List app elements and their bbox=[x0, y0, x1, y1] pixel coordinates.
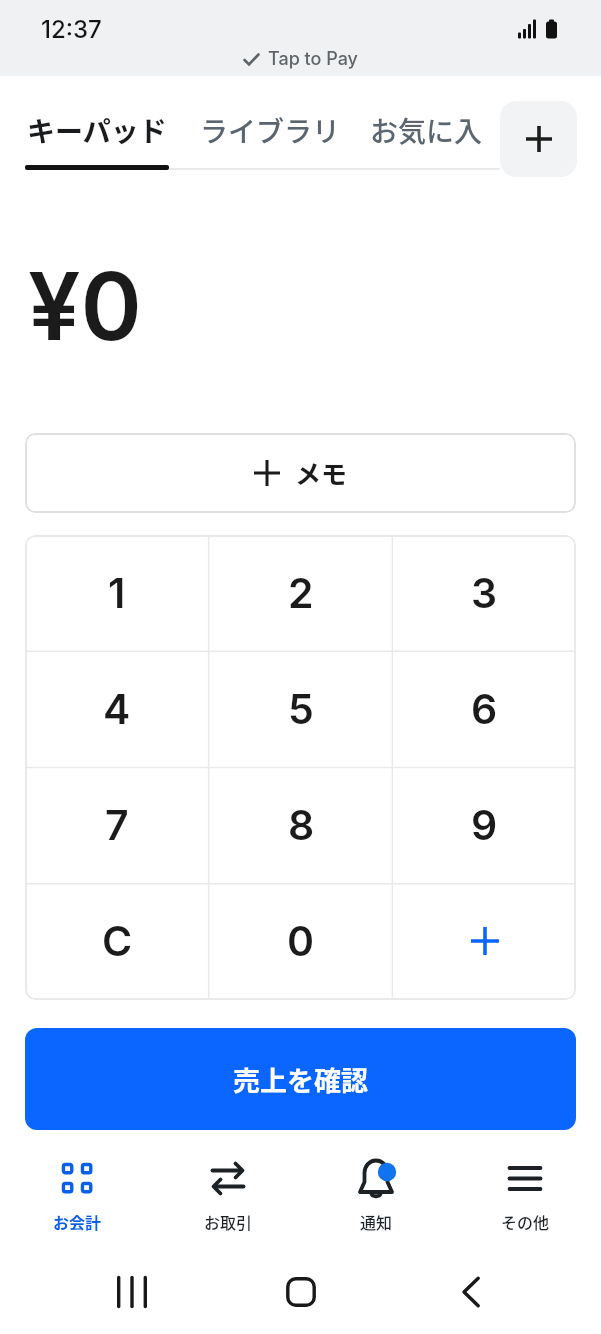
button[interactable]: キーパッド bbox=[27, 110, 167, 151]
button[interactable]: 9 bbox=[393, 767, 576, 883]
staticText: ライブラリ bbox=[200, 110, 341, 151]
button[interactable] bbox=[393, 883, 576, 999]
button[interactable] bbox=[500, 101, 577, 177]
staticText: 4 bbox=[103, 684, 131, 734]
button[interactable]: 7 bbox=[25, 767, 209, 883]
button[interactable] bbox=[433, 1262, 509, 1322]
button[interactable]: 2 bbox=[209, 535, 393, 651]
staticText: 2 bbox=[288, 568, 314, 618]
staticText: お会計 bbox=[53, 1210, 102, 1233]
staticText: 3 bbox=[471, 568, 498, 618]
button[interactable]: 6 bbox=[393, 651, 576, 767]
button[interactable]: C bbox=[25, 883, 209, 999]
button[interactable] bbox=[263, 1262, 339, 1322]
staticText: 8 bbox=[288, 800, 315, 850]
staticText: 売上を確認 bbox=[233, 1060, 368, 1099]
staticText: 0 bbox=[287, 916, 315, 966]
staticText: 9 bbox=[471, 800, 498, 850]
staticText: C bbox=[102, 916, 133, 966]
button[interactable]: その他 bbox=[473, 1158, 577, 1242]
staticText: お気に入 bbox=[370, 110, 483, 151]
staticText: 7 bbox=[105, 800, 129, 850]
staticText: 6 bbox=[471, 684, 498, 734]
button[interactable]: お取引 bbox=[176, 1158, 280, 1242]
button[interactable]: 通知 bbox=[324, 1158, 428, 1242]
button[interactable]: お気に入 bbox=[370, 110, 483, 151]
button[interactable]: お会計 bbox=[25, 1158, 129, 1242]
staticText: メモ bbox=[295, 454, 348, 492]
staticText: ¥0 bbox=[28, 250, 142, 363]
button[interactable]: 1 bbox=[25, 535, 209, 651]
staticText: 12:37 bbox=[41, 15, 102, 44]
button[interactable] bbox=[94, 1262, 170, 1322]
button[interactable]: メモ bbox=[25, 433, 576, 513]
staticText: お取引 bbox=[204, 1210, 253, 1233]
button[interactable]: ライブラリ bbox=[200, 110, 341, 151]
button[interactable]: 4 bbox=[25, 651, 209, 767]
staticText: その他 bbox=[501, 1210, 550, 1233]
button[interactable]: 5 bbox=[209, 651, 393, 767]
staticText: 5 bbox=[288, 684, 314, 734]
button[interactable]: 3 bbox=[393, 535, 576, 651]
staticText: 通知 bbox=[360, 1210, 393, 1233]
staticText: Tap to Pay bbox=[268, 48, 358, 70]
button[interactable]: 0 bbox=[209, 883, 393, 999]
staticText: キーパッド bbox=[27, 110, 167, 151]
staticText: 1 bbox=[108, 568, 126, 618]
button[interactable]: 8 bbox=[209, 767, 393, 883]
button[interactable]: 売上を確認 bbox=[25, 1028, 576, 1130]
